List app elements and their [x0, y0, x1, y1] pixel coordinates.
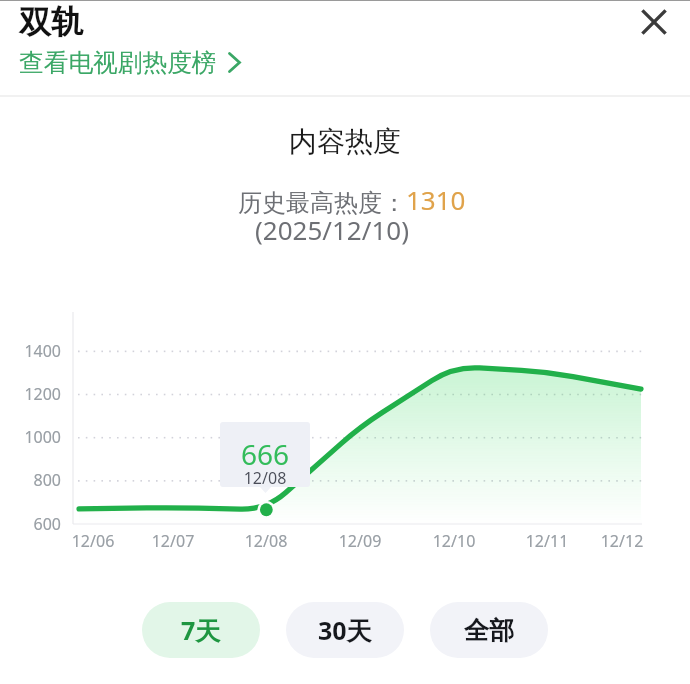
staticText: 12/12	[587, 530, 657, 552]
button[interactable]: 全部	[430, 602, 548, 658]
button[interactable]: Close	[632, 0, 676, 44]
staticText: 12/09	[325, 530, 395, 552]
staticText: (2025/12/10)	[0, 212, 677, 247]
staticText: 12/11	[512, 530, 582, 552]
staticText: 双轨	[19, 2, 83, 42]
button[interactable]: 30天	[286, 602, 404, 658]
staticText: 1400	[19, 340, 61, 362]
staticText: 12/06	[58, 530, 128, 552]
staticText: 查看电视剧热度榜	[19, 47, 217, 78]
staticText: 12/10	[419, 530, 489, 552]
button[interactable]: 查看电视剧热度榜	[19, 47, 241, 78]
staticText: 666	[220, 435, 310, 473]
button[interactable]: 7天	[142, 602, 260, 658]
staticText: 历史最高热度：	[238, 188, 406, 218]
staticText: 7天	[181, 613, 221, 647]
staticText: 1200	[19, 383, 61, 405]
staticText: 1000	[19, 426, 61, 448]
staticText: 12/08	[231, 530, 301, 552]
staticText: 12/08	[220, 467, 310, 487]
staticText: 30天	[318, 613, 372, 647]
staticText: 600	[19, 513, 61, 535]
staticText: 800	[19, 469, 61, 491]
staticText: 1310	[406, 182, 466, 217]
staticText: 12/07	[138, 530, 208, 552]
button[interactable]: 666	[220, 422, 310, 487]
staticText: 内容热度	[0, 124, 690, 159]
staticText: 全部	[464, 615, 514, 646]
